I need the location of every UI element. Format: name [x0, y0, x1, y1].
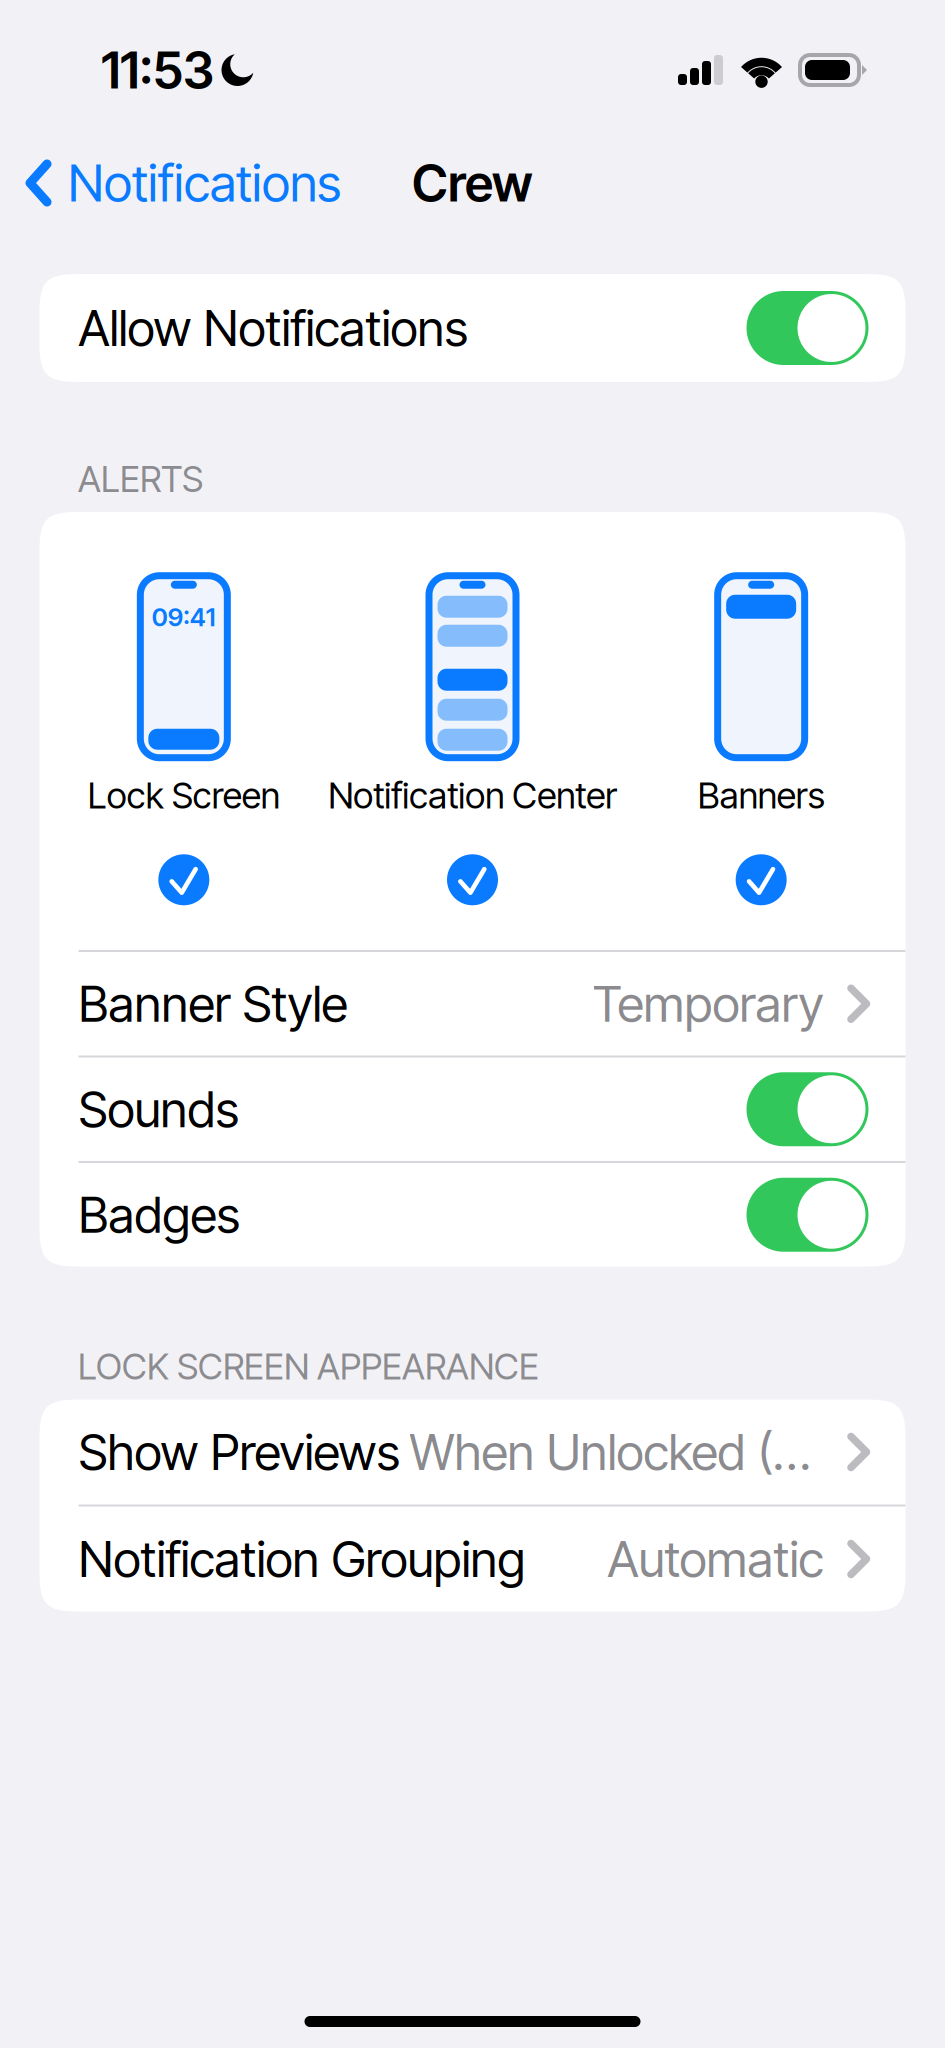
- staticText: Sounds: [78, 1079, 238, 1139]
- staticText: LOCK SCREEN APPEARANCE: [78, 1345, 539, 1388]
- button[interactable]: Allow Notifications: [39, 274, 905, 382]
- button[interactable]: Notification Grouping: [39, 1506, 905, 1611]
- button[interactable]: Banners: [617, 574, 905, 907]
- staticText: Notifications: [68, 152, 341, 214]
- staticText: Show Previews: [78, 1422, 399, 1482]
- staticText: Notification Grouping: [78, 1529, 525, 1589]
- staticText: Lock Screen: [88, 774, 280, 817]
- staticText: Badges: [78, 1185, 239, 1245]
- button[interactable]: Notifications: [0, 137, 400, 229]
- button[interactable]: Badges: [39, 1163, 905, 1266]
- staticText: Allow Notifications: [78, 298, 467, 358]
- staticText: ALERTS: [78, 457, 203, 501]
- staticText: Temporary: [592, 974, 823, 1034]
- staticText: Notification Center: [328, 774, 617, 817]
- staticText: Crew: [412, 152, 533, 214]
- button[interactable]: 09:41: [39, 574, 328, 907]
- staticText: Banners: [698, 774, 825, 817]
- button[interactable]: Notification Center: [328, 574, 617, 907]
- button[interactable]: Show Previews: [39, 1399, 905, 1504]
- button[interactable]: Sounds: [39, 1057, 905, 1161]
- staticText: Banner Style: [78, 974, 347, 1034]
- staticText: 09:41: [152, 602, 216, 632]
- staticText: When Unlocked (Defau…: [409, 1422, 823, 1482]
- staticText: 11:53: [101, 39, 214, 101]
- button[interactable]: Banner Style: [39, 952, 905, 1055]
- staticText: Automatic: [607, 1529, 823, 1589]
